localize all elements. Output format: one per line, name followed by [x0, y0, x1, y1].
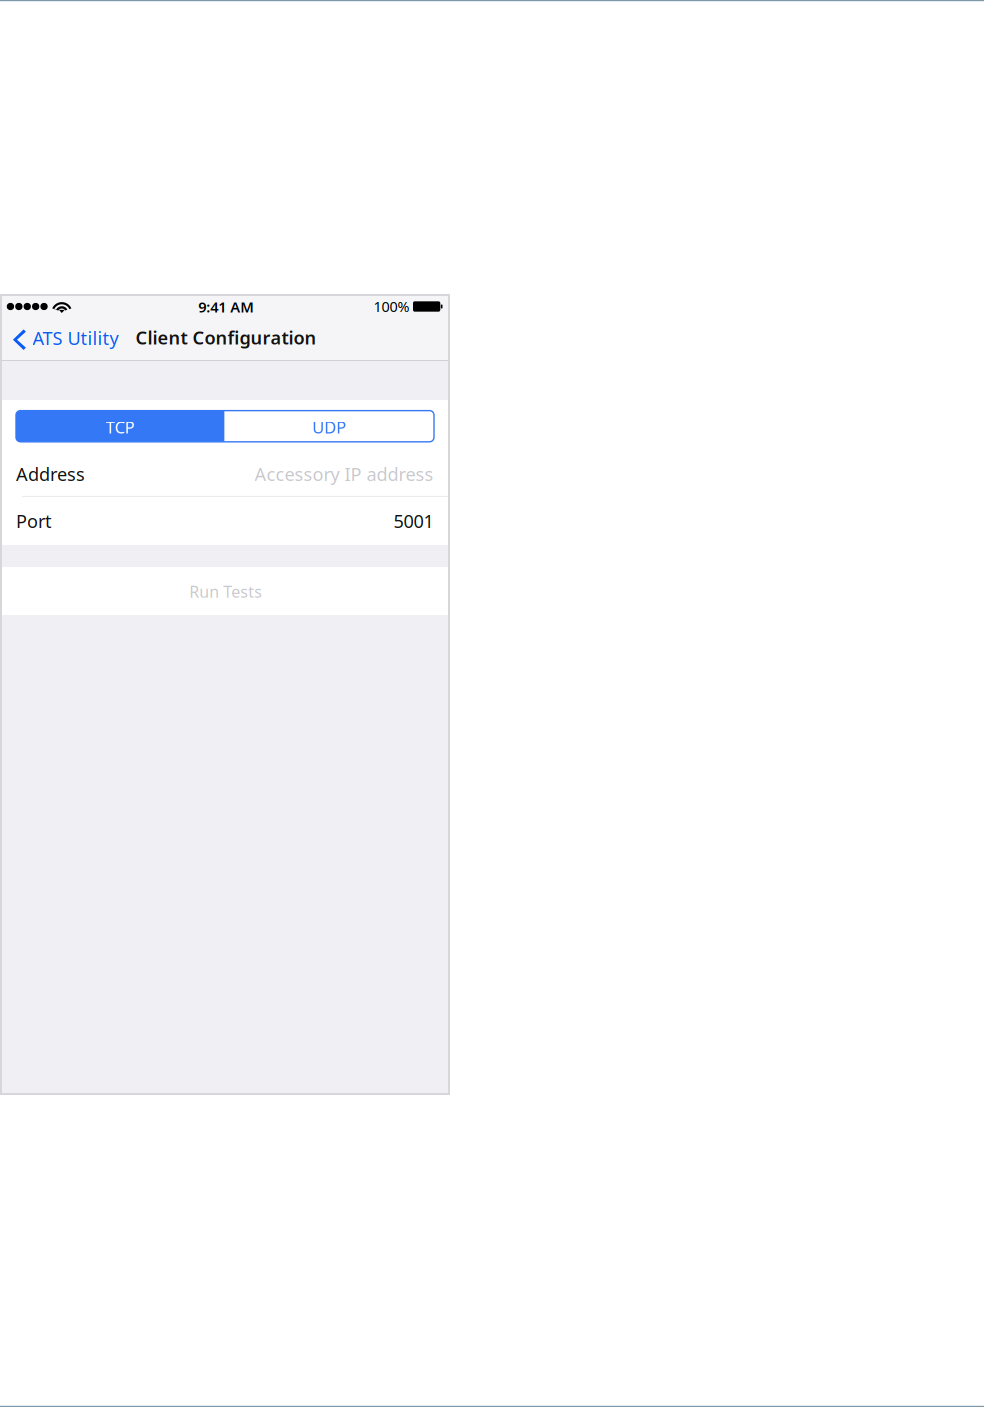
staticText: Address — [16, 462, 85, 486]
button[interactable]: TCP — [16, 411, 225, 442]
button[interactable]: UDP — [225, 411, 434, 442]
button[interactable]: Port — [0, 497, 450, 545]
staticText: Run Tests — [189, 581, 262, 602]
staticText: Client Configuration — [135, 325, 316, 350]
staticText: 100% — [373, 297, 409, 316]
staticText: 9:41 AM — [198, 297, 254, 317]
button[interactable]: Address — [0, 450, 450, 497]
staticText: TCP — [106, 416, 135, 438]
button[interactable]: Run Tests — [0, 567, 450, 615]
staticText: Port — [16, 509, 52, 533]
staticText: 5001 — [393, 509, 433, 533]
button[interactable]: ATS Utility — [0, 319, 128, 361]
staticText: ATS Utility — [32, 326, 118, 350]
staticText: Accessory IP address — [254, 462, 433, 486]
staticText: UDP — [312, 416, 346, 438]
